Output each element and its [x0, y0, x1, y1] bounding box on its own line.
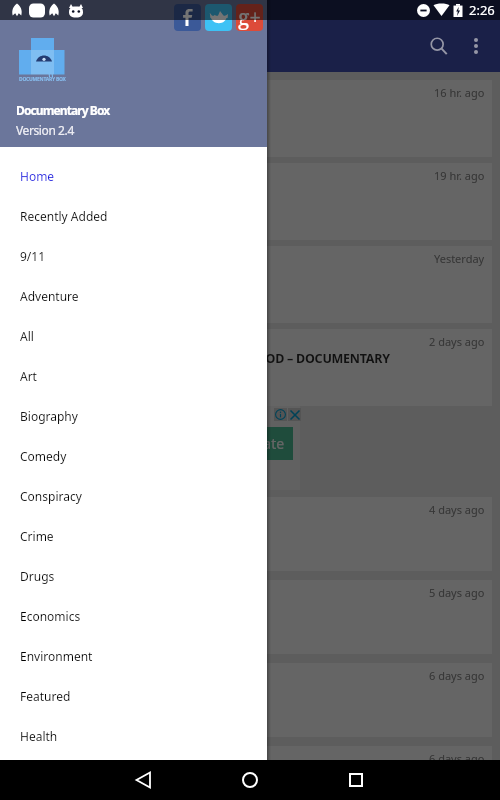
button[interactable]: 4 days ago: [8, 497, 492, 571]
button[interactable]: 2 days ago: [8, 329, 492, 406]
button[interactable]: Back: [123, 760, 163, 800]
staticText: 19 hr. ago: [434, 168, 485, 183]
button[interactable]: Home: [230, 760, 270, 800]
button[interactable]: Conspiracy: [0, 476, 267, 516]
staticText: Drugs: [20, 568, 55, 584]
button[interactable]: 9/11: [0, 236, 267, 276]
staticText: 2 days ago: [429, 334, 485, 349]
button[interactable]: Adventure: [0, 276, 267, 316]
button[interactable]: Donate: [228, 427, 293, 460]
staticText: g+: [238, 4, 262, 30]
staticText: 4 days ago: [429, 502, 485, 517]
button[interactable]: Search: [417, 24, 461, 68]
staticText: Donate: [236, 434, 285, 453]
button[interactable]: Home: [0, 156, 267, 196]
staticText: Economics: [20, 608, 81, 624]
button[interactable]: Economics: [0, 596, 267, 636]
button[interactable]: Yesterday: [8, 246, 492, 323]
button[interactable]: Share on Facebook: [174, 4, 201, 31]
button[interactable]: 16 hr. ago: [8, 80, 492, 157]
staticText: Documentary Box: [16, 102, 110, 118]
staticText: Featured: [20, 688, 71, 704]
button[interactable]: 6 days ago: [8, 746, 492, 760]
staticText: Conspiracy: [20, 488, 82, 504]
staticText: Version 2.4: [16, 122, 74, 138]
staticText: Adventure: [20, 288, 79, 304]
staticText: Recently Added: [20, 208, 108, 224]
staticText: 6 days ago: [429, 751, 485, 760]
staticText: 16 hr. ago: [434, 85, 485, 100]
staticText: 5 days ago: [429, 585, 485, 600]
button[interactable]: 19 hr. ago: [8, 163, 492, 240]
button[interactable]: Share on Google Plus: [236, 4, 263, 31]
staticText: Biography: [20, 408, 78, 424]
staticText: Environment: [20, 648, 93, 664]
button[interactable]: 5 days ago: [8, 580, 492, 654]
button[interactable]: Environment: [0, 636, 267, 676]
button[interactable]: Health: [0, 716, 267, 756]
button[interactable]: Art: [0, 356, 267, 396]
staticText: Art: [20, 368, 37, 384]
button[interactable]: Comedy: [0, 436, 267, 476]
button[interactable]: [0, 406, 300, 490]
button[interactable]: Recent apps: [336, 760, 376, 800]
staticText: Health: [20, 728, 58, 744]
staticText: 6 days ago: [429, 668, 485, 683]
button[interactable]: All: [0, 316, 267, 356]
button[interactable]: Recently Added: [0, 196, 267, 236]
staticText: 2:26: [469, 1, 495, 19]
button[interactable]: Ad information: [274, 408, 287, 421]
button[interactable]: Featured: [0, 676, 267, 716]
button[interactable]: Close ad: [288, 408, 301, 421]
button[interactable]: Drugs: [0, 556, 267, 596]
staticText: 9/11: [20, 248, 46, 264]
button[interactable]: Biography: [0, 396, 267, 436]
staticText: Crime: [20, 528, 54, 544]
staticText: DOCUMENTARY BOX: [19, 76, 66, 83]
staticText: Home: [20, 168, 55, 184]
button[interactable]: Share on Twitter: [205, 4, 232, 31]
staticText: All: [20, 328, 34, 344]
staticText: Yesterday: [434, 251, 485, 266]
staticText: BEFORE THE FLOOD – DOCUMENTARY: [168, 350, 390, 367]
button[interactable]: More options: [454, 24, 498, 68]
button[interactable]: 6 days ago: [8, 663, 492, 737]
button[interactable]: Crime: [0, 516, 267, 556]
staticText: Comedy: [20, 448, 67, 464]
